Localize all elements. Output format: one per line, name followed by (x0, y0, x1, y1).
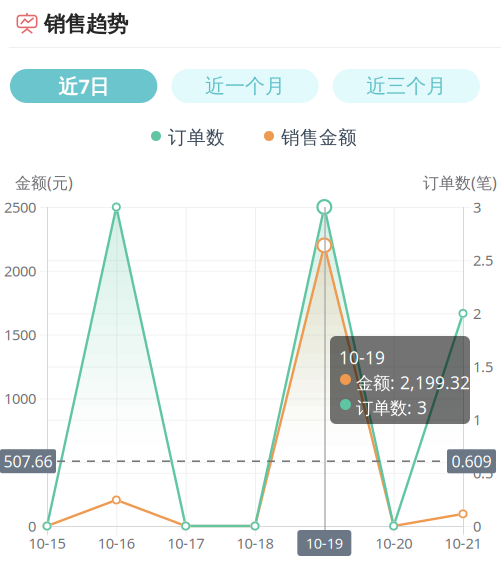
staticText: 2 (473, 304, 481, 323)
staticText: 500 (12, 452, 36, 472)
button[interactable]: 近三个月 (333, 69, 480, 103)
staticText: 0.5 (473, 463, 493, 483)
staticText: 金额: 2,199.32 (356, 371, 470, 394)
staticText: 1500 (4, 325, 36, 344)
staticText: 10-15 (28, 533, 65, 553)
staticText: 2000 (4, 261, 36, 281)
staticText: 10-19 (306, 533, 343, 553)
staticText: 销售趋势 (44, 11, 128, 37)
staticText: 10-17 (167, 533, 204, 553)
staticText: 1.5 (473, 357, 493, 376)
staticText: 订单数: 3 (356, 396, 427, 419)
staticText: 10-20 (375, 533, 412, 553)
staticText: 订单数(笔) (423, 172, 497, 193)
button[interactable]: 近7日 (10, 69, 157, 103)
staticText: 507.66 (3, 451, 52, 472)
button[interactable]: 近一个月 (171, 69, 319, 103)
staticText: 10-21 (444, 533, 481, 553)
staticText: 0 (28, 516, 36, 536)
staticText: 近7日 (58, 73, 109, 99)
staticText: 0 (473, 516, 481, 536)
staticText: 2.5 (473, 250, 493, 270)
staticText: 2500 (4, 197, 36, 217)
staticText: 近一个月 (205, 74, 285, 98)
staticText: 0.609 (451, 451, 491, 472)
staticText: 近三个月 (366, 74, 446, 98)
staticText: 销售金额 (281, 126, 357, 149)
staticText: 10-16 (98, 533, 135, 553)
staticText: 10-18 (236, 533, 273, 553)
staticText: 10-19 (339, 346, 385, 369)
staticText: 3 (473, 197, 481, 217)
staticText: 1 (473, 410, 481, 429)
staticText: 订单数 (168, 126, 225, 149)
staticText: 金额(元) (15, 172, 73, 193)
staticText: 1000 (4, 389, 36, 408)
